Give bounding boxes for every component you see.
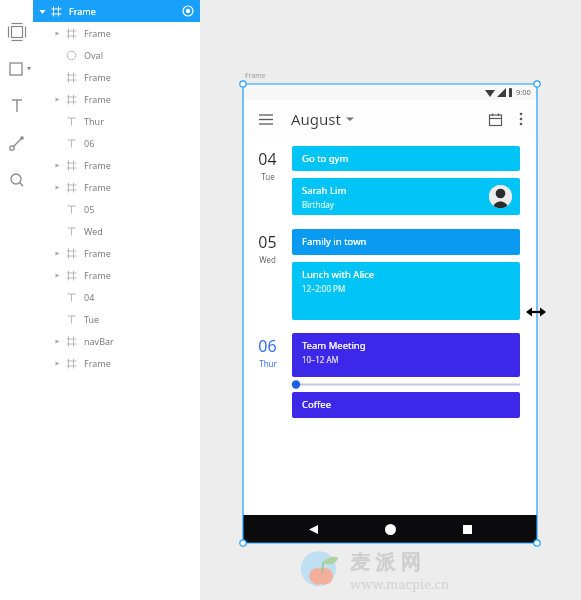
staticText: navBar	[84, 335, 114, 347]
button[interactable]: Frame	[33, 22, 200, 44]
staticText: Frame	[245, 71, 266, 81]
button[interactable]: Pen tool	[5, 131, 29, 155]
staticText: Lunch with Alice	[302, 268, 375, 281]
button[interactable]: 05	[33, 198, 200, 220]
staticText: 04	[258, 148, 277, 170]
staticText: Oval	[84, 49, 103, 61]
staticText: 12–2:00 PM	[302, 283, 346, 294]
staticText: Frame	[84, 93, 111, 105]
staticText: 04	[84, 291, 95, 303]
button[interactable]: Frame	[33, 242, 200, 264]
button[interactable]: Frame	[33, 264, 200, 286]
button[interactable]: August	[291, 109, 354, 129]
staticText: www.macpie.cn	[350, 575, 450, 593]
staticText: 9:00	[516, 87, 531, 97]
button[interactable]: Go to gym	[292, 146, 520, 171]
staticText: 麦 派 网	[350, 548, 421, 575]
button[interactable]: Frame	[33, 176, 200, 198]
button[interactable]: Thur	[33, 110, 200, 132]
button[interactable]: Frame	[33, 352, 200, 374]
button[interactable]: Frame	[33, 154, 200, 176]
button[interactable]: Back	[300, 516, 326, 542]
staticText: Frame	[84, 181, 111, 193]
button[interactable]: 06	[33, 132, 200, 154]
button[interactable]: Shape tool	[5, 57, 29, 81]
staticText: Team Meeting	[302, 339, 366, 352]
button[interactable]: Sarah Lim	[292, 178, 520, 215]
button[interactable]: Home	[377, 516, 403, 542]
staticText: 05	[84, 203, 95, 215]
staticText: Frame	[84, 71, 111, 83]
button[interactable]: Frame tool	[5, 20, 29, 44]
staticText: Wed	[259, 254, 276, 265]
button[interactable]: 04	[33, 286, 200, 308]
button[interactable]: Coffee	[292, 392, 520, 418]
staticText: Frame	[84, 247, 111, 259]
staticText: Wed	[84, 225, 103, 237]
staticText: Sarah Lim	[302, 184, 347, 197]
staticText: 06	[258, 335, 277, 357]
staticText: Go to gym	[302, 152, 349, 165]
staticText: Tue	[84, 313, 100, 325]
staticText: Coffee	[302, 398, 332, 411]
button[interactable]: Recent apps	[454, 516, 480, 542]
button[interactable]: Wed	[33, 220, 200, 242]
button[interactable]: Calendar view	[481, 105, 509, 133]
staticText: Thur	[84, 115, 104, 127]
button[interactable]: Frame	[33, 0, 200, 22]
staticText: Frame	[84, 27, 111, 39]
button[interactable]: More options	[509, 107, 533, 131]
button[interactable]: Oval	[33, 44, 200, 66]
staticText: Frame	[84, 159, 111, 171]
button[interactable]: Frame	[33, 66, 200, 88]
staticText: Frame	[69, 5, 96, 17]
staticText: Birthday	[302, 199, 334, 210]
staticText: August	[291, 109, 341, 129]
button[interactable]: Search	[5, 168, 29, 192]
button[interactable]: Tue	[33, 308, 200, 330]
button[interactable]: navBar	[33, 330, 200, 352]
staticText: 10–12 AM	[302, 354, 339, 365]
button[interactable]: Family in town	[292, 229, 520, 255]
button[interactable]: Team Meeting	[292, 333, 520, 377]
staticText: Frame	[84, 357, 111, 369]
staticText: Thur	[259, 358, 277, 369]
staticText: Frame	[84, 269, 111, 281]
button[interactable]: Text tool	[5, 94, 29, 118]
staticText: 06	[84, 137, 95, 149]
button[interactable]: Open navigation menu	[253, 106, 279, 132]
staticText: Tue	[261, 171, 275, 182]
staticText: 05	[258, 231, 277, 253]
button[interactable]: Frame	[33, 88, 200, 110]
staticText: Family in town	[302, 235, 367, 248]
button[interactable]: Lunch with Alice	[292, 262, 520, 320]
